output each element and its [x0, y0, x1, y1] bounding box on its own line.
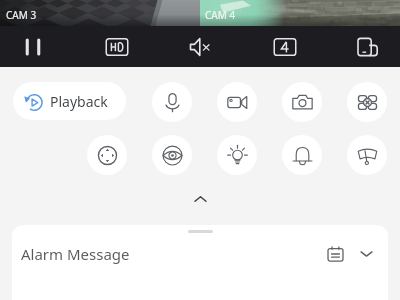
button[interactable]: Expand controls	[0, 186, 400, 212]
button[interactable]: Light	[217, 135, 257, 175]
button[interactable]: HD quality	[84, 26, 149, 67]
button[interactable]: Cast to device	[336, 26, 400, 67]
staticText: CAM 3	[6, 8, 37, 22]
button[interactable]: Split layout	[347, 82, 387, 122]
staticText: CAM 4	[205, 8, 236, 22]
button[interactable]: Four channels	[252, 26, 317, 67]
button[interactable]: Wiper	[347, 135, 387, 175]
button[interactable]: Alarm	[282, 135, 322, 175]
button[interactable]: Pause	[0, 26, 65, 67]
button[interactable]: Take snapshot	[282, 82, 322, 122]
button[interactable]: Playback	[13, 82, 126, 120]
button[interactable]: Record video	[217, 82, 257, 122]
button[interactable]: Mute	[167, 26, 232, 67]
button[interactable]: Microphone	[152, 82, 192, 122]
button[interactable]: Alarm Message	[12, 233, 388, 275]
staticText: Playback	[50, 92, 108, 111]
button[interactable]: Preview	[152, 135, 192, 175]
button[interactable]: Pan tilt zoom	[87, 135, 127, 175]
staticText: Alarm Message	[21, 244, 130, 264]
